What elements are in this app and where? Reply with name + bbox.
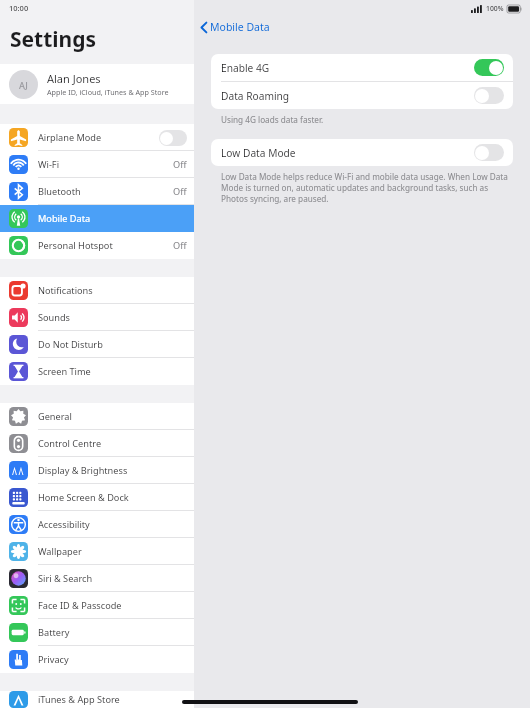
staticText: Settings: [10, 25, 97, 54]
staticText: 100%: [486, 4, 504, 13]
staticText: Off: [173, 239, 187, 252]
button[interactable]: Display & Brightness: [0, 457, 194, 484]
button[interactable]: Privacy: [0, 646, 194, 673]
button[interactable]: Toggle: [474, 144, 504, 161]
staticText: Screen Time: [38, 365, 187, 378]
button[interactable]: Low Data Mode: [211, 139, 513, 166]
button[interactable]: AJ: [0, 64, 194, 104]
staticText: Airplane Mode: [38, 131, 159, 144]
button[interactable]: Toggle: [159, 130, 187, 146]
button[interactable]: Toggle: [474, 59, 504, 76]
button[interactable]: General: [0, 403, 194, 430]
button[interactable]: Wi-Fi: [0, 151, 194, 178]
button[interactable]: Toggle: [474, 87, 504, 104]
button[interactable]: iTunes & App Store: [0, 691, 194, 708]
button[interactable]: Battery: [0, 619, 194, 646]
button[interactable]: Screen Time: [0, 358, 194, 385]
button[interactable]: Enable 4G: [211, 54, 513, 81]
staticText: Low Data Mode: [221, 146, 474, 160]
staticText: Using 4G loads data faster.: [221, 114, 324, 125]
staticText: 10:00: [9, 3, 29, 13]
button[interactable]: Wallpaper: [0, 538, 194, 565]
staticText: Battery: [38, 626, 187, 639]
button[interactable]: Control Centre: [0, 430, 194, 457]
staticText: Accessibility: [38, 518, 187, 531]
staticText: Apple ID, iCloud, iTunes & App Store: [47, 87, 169, 97]
staticText: Mobile Data: [38, 212, 187, 225]
staticText: Wi-Fi: [38, 158, 173, 171]
staticText: Do Not Disturb: [38, 338, 187, 351]
staticText: Low Data Mode helps reduce Wi-Fi and mob…: [221, 171, 510, 204]
staticText: Off: [173, 158, 187, 171]
button[interactable]: Sounds: [0, 304, 194, 331]
button[interactable]: Mobile Data: [0, 205, 194, 232]
staticText: Siri & Search: [38, 572, 187, 585]
staticText: Enable 4G: [221, 61, 474, 75]
staticText: Personal Hotspot: [38, 239, 173, 252]
button[interactable]: Home Screen & Dock: [0, 484, 194, 511]
staticText: Bluetooth: [38, 185, 173, 198]
button[interactable]: Personal Hotspot: [0, 232, 194, 259]
staticText: Off: [173, 185, 187, 198]
staticText: General: [38, 410, 187, 423]
button[interactable]: Face ID & Passcode: [0, 592, 194, 619]
staticText: Privacy: [38, 653, 187, 666]
button[interactable]: Accessibility: [0, 511, 194, 538]
staticText: Wallpaper: [38, 545, 187, 558]
staticText: Face ID & Passcode: [38, 599, 187, 612]
staticText: Control Centre: [38, 437, 187, 450]
staticText: Mobile Data: [210, 20, 270, 34]
staticText: Data Roaming: [221, 89, 474, 103]
button[interactable]: Data Roaming: [211, 82, 513, 109]
staticText: AJ: [19, 79, 28, 91]
button[interactable]: Siri & Search: [0, 565, 194, 592]
button[interactable]: Bluetooth: [0, 178, 194, 205]
staticText: Sounds: [38, 311, 187, 324]
staticText: Home Screen & Dock: [38, 491, 187, 504]
button[interactable]: Notifications: [0, 277, 194, 304]
staticText: Display & Brightness: [38, 464, 187, 477]
button[interactable]: Airplane Mode: [0, 124, 194, 151]
staticText: iTunes & App Store: [38, 693, 187, 706]
staticText: Notifications: [38, 284, 187, 297]
button[interactable]: Do Not Disturb: [0, 331, 194, 358]
button[interactable]: Mobile Data: [200, 20, 270, 34]
staticText: Alan Jones: [47, 71, 101, 86]
